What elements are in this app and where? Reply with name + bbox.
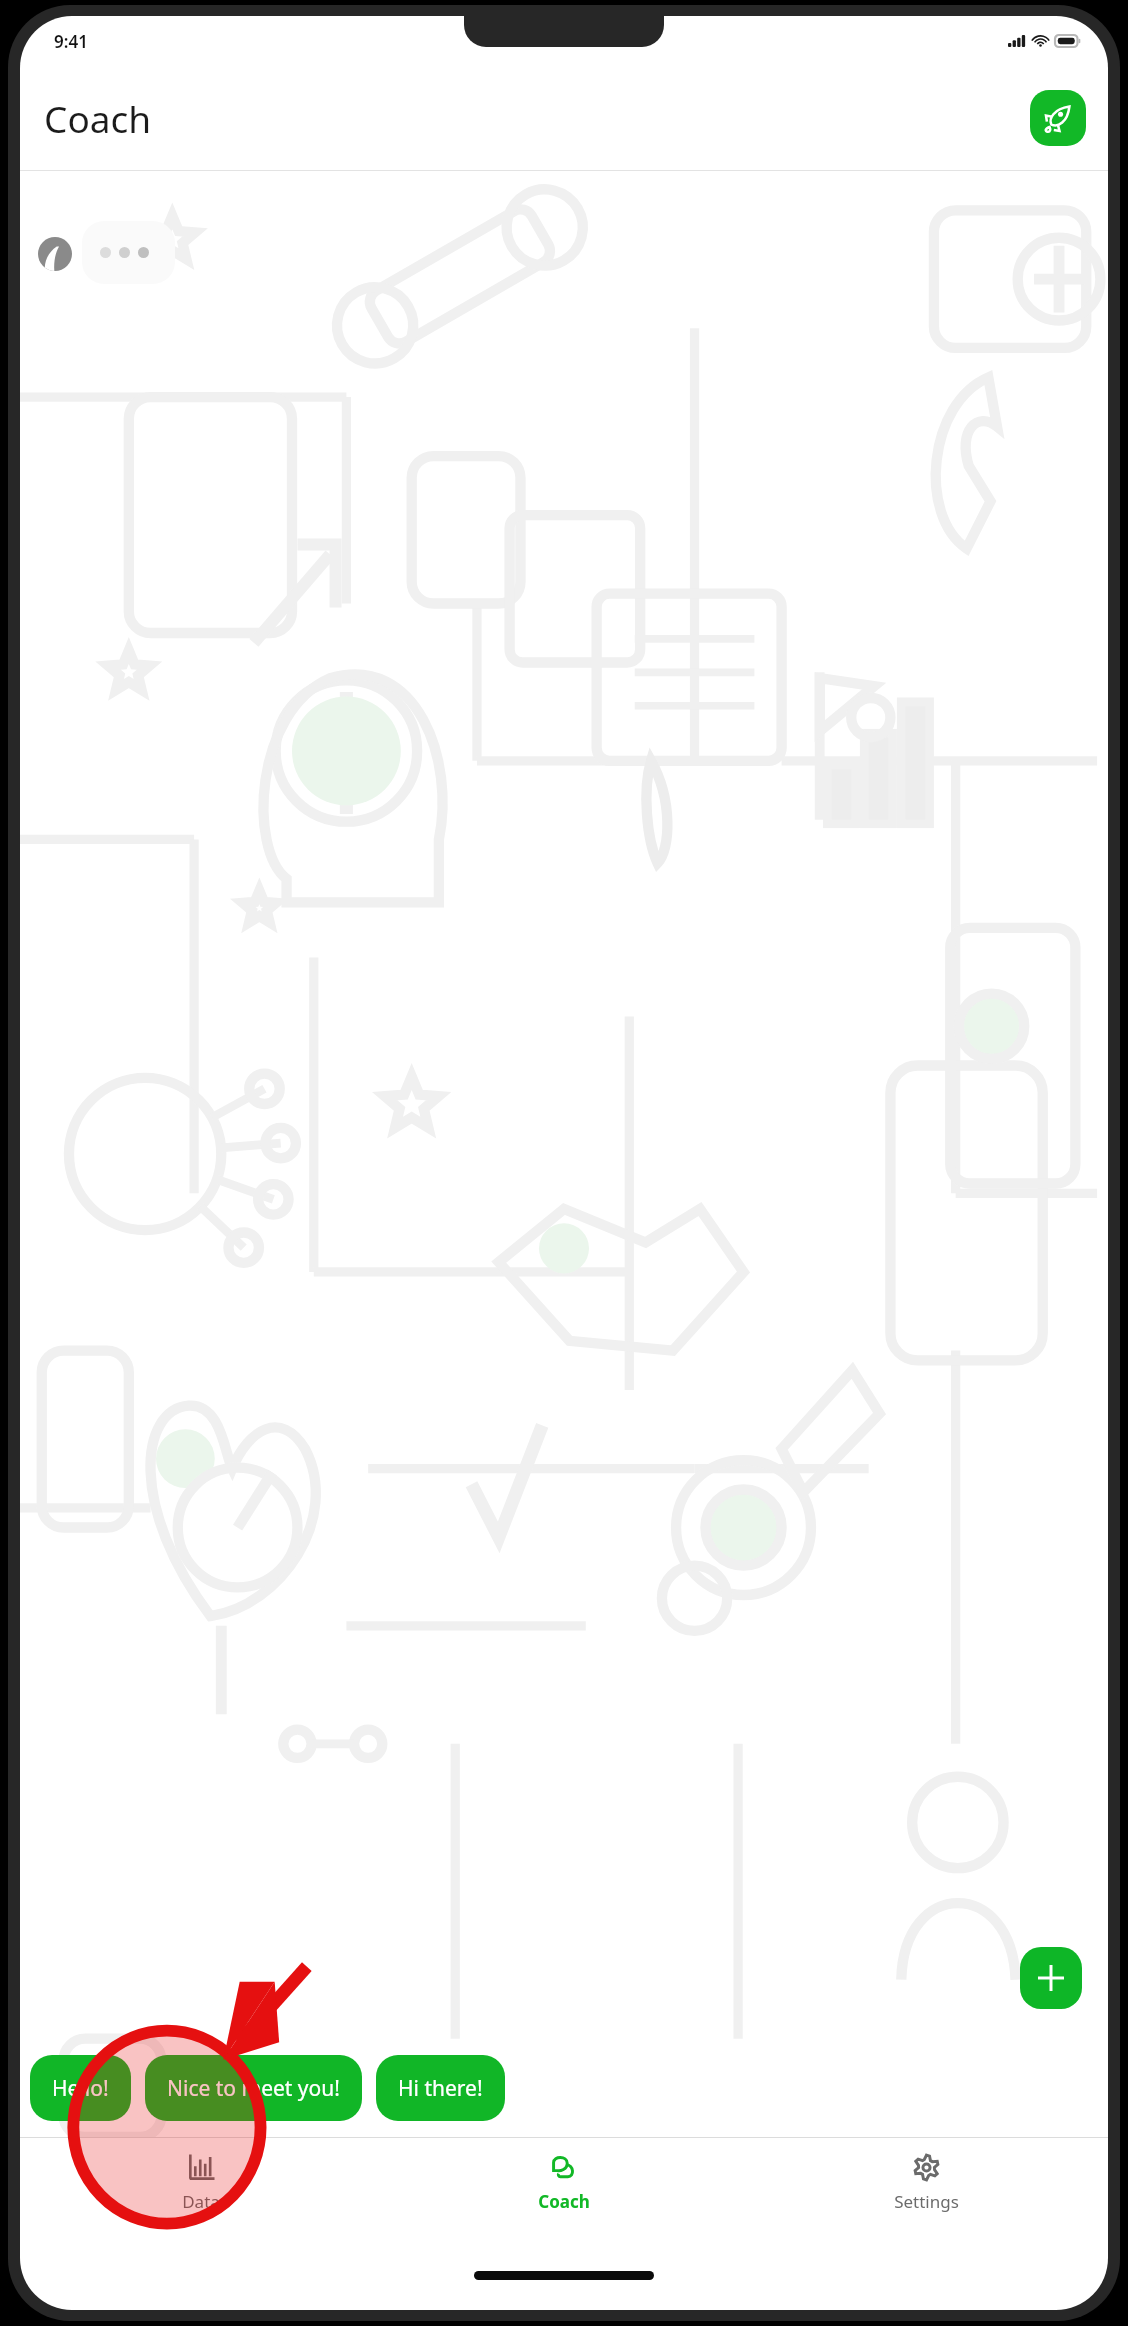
staticText: Coach — [538, 2190, 590, 2213]
button[interactable]: Settings — [745, 2138, 1108, 2248]
staticText: Hi there! — [398, 2074, 483, 2103]
staticText: Data — [182, 2190, 220, 2213]
staticText: Hello! — [52, 2074, 109, 2103]
staticText: 9:41 — [54, 30, 88, 53]
button[interactable]: Data — [20, 2138, 382, 2248]
staticText: Settings — [894, 2190, 959, 2213]
button[interactable]: Coach — [382, 2138, 745, 2248]
staticText: Coach — [44, 93, 152, 143]
button[interactable]: Add — [1020, 1947, 1082, 2009]
button[interactable]: Launch — [1030, 90, 1086, 146]
button[interactable]: Hi there! — [376, 2055, 505, 2121]
button[interactable]: Hello! — [30, 2055, 131, 2121]
staticText: Nice to meet you! — [167, 2074, 340, 2103]
button[interactable]: Nice to meet you! — [145, 2055, 362, 2121]
